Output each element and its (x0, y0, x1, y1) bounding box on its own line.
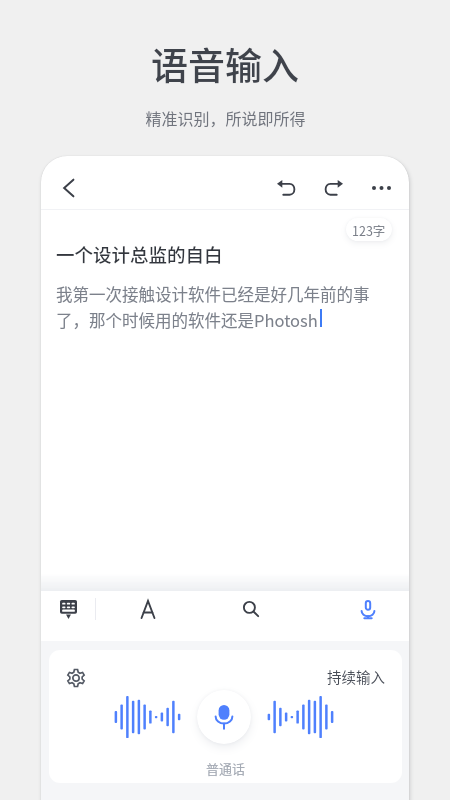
staticText: 精准识别，所说即所得 (145, 106, 306, 129)
button[interactable]: Redo (313, 168, 353, 208)
staticText: 持续输入 (327, 666, 385, 687)
button[interactable]: More options (361, 168, 401, 208)
staticText: 一个设计总监的自白 (56, 241, 223, 268)
button[interactable]: Record voice (197, 690, 251, 744)
button[interactable]: Undo (266, 168, 306, 208)
button[interactable]: Text style (128, 589, 168, 629)
button[interactable]: Keyboard (48, 589, 88, 629)
button[interactable]: 持续输入 (325, 664, 387, 689)
staticText: 普通话 (206, 759, 246, 778)
staticText: 我第一次接触设计软件已经是好几年前的事了，那个时候用的软件还是Photosh (56, 282, 397, 332)
staticText: 123字 (352, 221, 386, 239)
button[interactable]: Back (47, 167, 91, 209)
button[interactable]: Voice input (348, 589, 388, 629)
staticText: 语音输入 (151, 37, 299, 91)
button[interactable]: 123字 (346, 218, 392, 241)
button[interactable]: Search (231, 589, 271, 629)
button[interactable]: Settings (58, 660, 94, 696)
